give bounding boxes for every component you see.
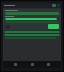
button[interactable]: Home xyxy=(28,61,37,68)
button[interactable]: Row 1 xyxy=(5,12,59,15)
button[interactable]: Progress xyxy=(5,18,59,20)
button[interactable]: Primary action xyxy=(48,24,59,29)
button[interactable]: Recents xyxy=(44,61,53,68)
button[interactable]: Item C xyxy=(4,37,57,39)
button[interactable]: Back xyxy=(11,61,20,68)
button[interactable]: Item A xyxy=(4,31,60,33)
button[interactable]: Item B xyxy=(4,34,60,36)
button[interactable]: Action xyxy=(52,4,56,7)
button[interactable]: Row 2 xyxy=(5,21,59,23)
